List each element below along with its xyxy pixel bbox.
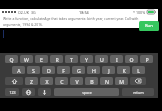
staticText: I xyxy=(116,56,118,63)
button[interactable]: D xyxy=(42,66,55,74)
staticText: D xyxy=(47,67,51,74)
staticText: M xyxy=(119,78,124,85)
button[interactable]: K xyxy=(117,66,130,74)
staticText: Write a function, calculateAge that take… xyxy=(3,16,141,27)
button[interactable]: T xyxy=(65,55,78,63)
staticText: T xyxy=(70,56,73,63)
staticText: O2-UK xyxy=(18,10,29,15)
staticText: B xyxy=(90,78,94,85)
staticText: H xyxy=(92,67,96,74)
button[interactable]: Backspace xyxy=(130,77,146,85)
staticText: F xyxy=(62,67,65,74)
staticText: A xyxy=(17,67,21,74)
button[interactable]: Change keyboard xyxy=(22,88,35,96)
staticText: L xyxy=(137,67,140,74)
button[interactable]: N xyxy=(100,77,113,85)
staticText: O xyxy=(129,56,134,63)
button[interactable]: C xyxy=(55,77,68,85)
button[interactable]: return xyxy=(122,88,154,96)
button[interactable]: Run xyxy=(139,21,159,31)
button[interactable]: H xyxy=(87,66,100,74)
staticText: R xyxy=(55,56,59,63)
button[interactable]: Z xyxy=(25,77,38,85)
staticText: 3G xyxy=(31,10,36,15)
staticText: Z xyxy=(30,78,33,85)
staticText: K xyxy=(122,67,126,74)
staticText: space xyxy=(82,90,92,95)
button[interactable]: G xyxy=(72,66,85,74)
button[interactable]: W xyxy=(20,55,33,63)
staticText: U xyxy=(100,56,104,63)
button[interactable]: Y xyxy=(80,55,93,63)
staticText: return xyxy=(133,90,144,95)
button[interactable]: X xyxy=(40,77,53,85)
staticText: C xyxy=(60,78,64,85)
button[interactable]: L xyxy=(132,66,145,74)
button[interactable]: M xyxy=(115,77,128,85)
staticText: Q xyxy=(9,56,14,63)
button[interactable]: O xyxy=(125,55,138,63)
button[interactable]: P xyxy=(140,55,153,63)
button[interactable]: J xyxy=(102,66,115,74)
button[interactable]: A xyxy=(12,66,25,74)
staticText: Y xyxy=(85,56,88,63)
button[interactable]: Q xyxy=(5,55,18,63)
staticText: G xyxy=(77,67,81,74)
button[interactable]: V xyxy=(70,77,83,85)
staticText: E xyxy=(40,56,43,63)
staticText: V xyxy=(75,78,79,85)
staticText: X xyxy=(45,78,49,85)
staticText: W xyxy=(24,56,29,63)
staticText: J xyxy=(108,67,110,74)
staticText: S xyxy=(32,67,35,74)
staticText: 18:54 xyxy=(79,10,89,15)
button[interactable]: R xyxy=(50,55,63,63)
staticText: Run xyxy=(145,23,153,29)
staticText: N xyxy=(105,78,109,85)
staticText: 123 xyxy=(9,90,16,95)
button[interactable]: I xyxy=(110,55,123,63)
button[interactable]: S xyxy=(27,66,40,74)
button[interactable]: space xyxy=(54,88,119,96)
staticText: P xyxy=(145,56,149,63)
button[interactable]: F xyxy=(57,66,70,74)
button[interactable]: U xyxy=(95,55,108,63)
button[interactable]: Shift xyxy=(5,77,23,85)
button[interactable]: 123 xyxy=(5,88,19,96)
button[interactable]: B xyxy=(85,77,98,85)
button[interactable]: Voice input xyxy=(38,88,51,96)
button[interactable]: E xyxy=(35,55,48,63)
staticText: 100% xyxy=(136,10,146,15)
